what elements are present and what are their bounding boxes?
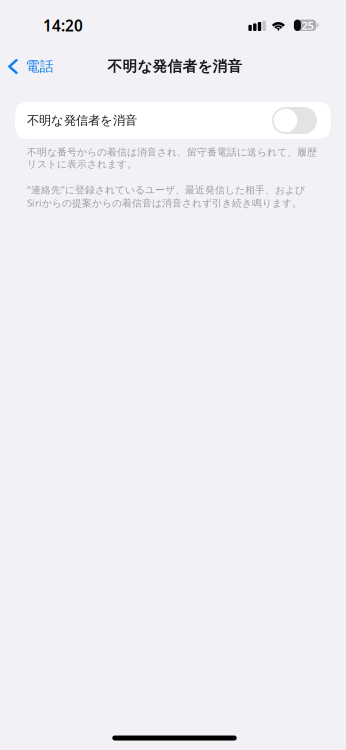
staticText: 電話 [26,58,54,75]
staticText: “連絡先”に登録されているユーザ、最近発信した相手、および [27,183,305,196]
staticText: 不明な発信者を消音 [107,57,242,76]
staticText: リストに表示されます。 [27,158,137,170]
button[interactable]: 電話 [0,52,54,81]
button[interactable]: 不明な発信者を消音 [15,102,331,139]
staticText: 25 [301,18,313,33]
staticText: 不明な番号からの着信は消音され、留守番電話に送られて、履歴 [27,146,317,158]
staticText: 14:20 [43,15,83,36]
staticText: 不明な発信者を消音 [27,113,137,128]
staticText: Siriからの提案からの着信音は消音されず引き続き鳴ります。 [27,196,302,209]
